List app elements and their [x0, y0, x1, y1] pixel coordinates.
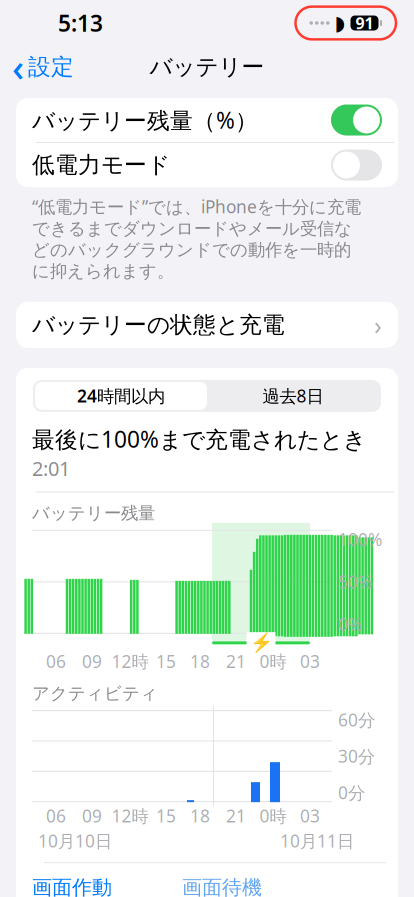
staticText: 21: [226, 650, 246, 673]
staticText: 18: [190, 650, 210, 673]
staticText: ⚡: [249, 632, 272, 653]
staticText: 03: [300, 804, 320, 827]
button[interactable]: 過去8日: [207, 382, 379, 410]
staticText: 0時: [259, 804, 286, 827]
staticText: 5:13: [58, 8, 103, 38]
staticText: 低電力モード: [32, 151, 170, 179]
staticText: 10月10日: [38, 829, 112, 852]
staticText: バッテリー残量（%）: [32, 105, 258, 135]
staticText: アクティビティ: [32, 683, 158, 704]
staticText: 18: [190, 804, 210, 827]
staticText: 過去8日: [262, 384, 323, 407]
staticText: “低電力モード”では、iPhoneを十分に充電できるまでダウンロードやメール受信…: [32, 195, 361, 282]
staticText: 91: [355, 12, 373, 34]
staticText: 09: [82, 650, 102, 673]
staticText: ◗: [334, 12, 345, 34]
staticText: ‹: [12, 42, 24, 92]
staticText: 06: [46, 650, 66, 673]
staticText: 09: [82, 804, 102, 827]
staticText: 50%: [338, 570, 372, 593]
staticText: 設定: [28, 53, 74, 81]
staticText: バッテリー: [149, 53, 264, 81]
staticText: 30分: [338, 745, 375, 768]
staticText: 15: [156, 650, 176, 673]
button[interactable]: ‹: [0, 36, 74, 98]
staticText: 画面待機: [182, 875, 262, 897]
staticText: 21: [226, 804, 246, 827]
button[interactable]: バッテリーの状態と充電: [16, 302, 398, 348]
staticText: 12時: [111, 650, 148, 673]
staticText: 0時: [259, 650, 286, 673]
staticText: 0分: [338, 781, 365, 804]
button[interactable]: 24時間以内: [35, 382, 207, 410]
staticText: 12時: [111, 804, 148, 827]
staticText: 03: [300, 650, 320, 673]
staticText: 100%: [338, 528, 382, 551]
staticText: バッテリー残量: [32, 502, 155, 524]
staticText: 画面作動: [32, 875, 112, 897]
staticText: 24時間以内: [77, 384, 165, 407]
button[interactable]: バッテリー残量（%）: [16, 98, 398, 142]
button[interactable]: 低電力モード: [16, 143, 398, 187]
staticText: ›: [374, 308, 382, 342]
staticText: 06: [46, 804, 66, 827]
staticText: 10月11日: [280, 829, 354, 852]
staticText: 0%: [338, 613, 362, 636]
staticText: 15: [156, 804, 176, 827]
staticText: 最後に100%まで充電されたとき: [32, 424, 366, 454]
staticText: バッテリーの状態と充電: [32, 311, 285, 339]
staticText: 60分: [338, 708, 375, 731]
staticText: 2:01: [32, 455, 70, 482]
